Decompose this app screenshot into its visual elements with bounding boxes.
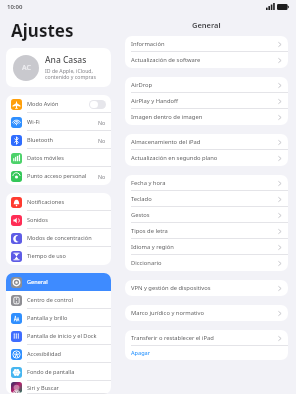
staticText: Pantalla y brillo <box>27 314 106 322</box>
button[interactable]: Apagar <box>125 346 288 360</box>
staticText: AirDrop <box>131 81 278 89</box>
staticText: Almacenamiento del iPad <box>131 138 278 146</box>
button[interactable]: Actualización de software <box>125 52 288 68</box>
button[interactable]: Bluetooth <box>6 131 111 149</box>
staticText: Modos de concentración <box>27 234 106 242</box>
staticText: Apagar <box>131 349 151 357</box>
button[interactable]: Modo Avión <box>89 100 106 109</box>
button[interactable]: VPN y gestión de dispositivos <box>125 280 288 296</box>
button[interactable]: Sonidos <box>6 211 111 229</box>
staticText: Diccionario <box>131 259 278 267</box>
button[interactable]: Tipos de letra <box>125 223 288 239</box>
button[interactable]: Marco jurídico y normativo <box>125 305 288 321</box>
button[interactable]: Gestos <box>125 207 288 223</box>
staticText: Punto acceso personal <box>27 172 98 180</box>
button[interactable]: Notificaciones <box>6 193 111 211</box>
button[interactable]: Pantalla y brillo <box>6 309 111 327</box>
staticText: Notificaciones <box>27 198 106 206</box>
staticText: Actualización en segundo plano <box>131 154 278 162</box>
staticText: AC <box>22 63 31 73</box>
staticText: Tipos de letra <box>131 227 278 235</box>
staticText: Idioma y región <box>131 243 278 251</box>
staticText: Siri y Buscar <box>27 384 106 392</box>
button[interactable]: AC <box>6 48 111 87</box>
staticText: VPN y gestión de dispositivos <box>131 284 278 292</box>
staticText: Ajustes <box>11 19 74 42</box>
button[interactable]: Idioma y región <box>125 239 288 255</box>
button[interactable]: Imagen dentro de imagen <box>125 109 288 125</box>
staticText: Marco jurídico y normativo <box>131 309 278 317</box>
button[interactable]: AirDrop <box>125 77 288 93</box>
button[interactable]: Fondo de pantalla <box>6 363 111 381</box>
button[interactable]: Diccionario <box>125 255 288 271</box>
button[interactable]: Datos móviles <box>6 149 111 167</box>
button[interactable]: Tiempo de uso <box>6 247 111 265</box>
staticText: Actualización de software <box>131 56 278 64</box>
button[interactable]: Accesibilidad <box>6 345 111 363</box>
staticText: Sonidos <box>27 216 106 224</box>
staticText: No <box>98 173 106 180</box>
button[interactable]: Actualización en segundo plano <box>125 150 288 166</box>
staticText: 10:00 <box>7 3 23 11</box>
staticText: Fecha y hora <box>131 179 278 187</box>
button[interactable]: Almacenamiento del iPad <box>125 134 288 150</box>
staticText: Bluetooth <box>27 136 98 144</box>
staticText: Datos móviles <box>27 154 106 162</box>
staticText: Gestos <box>131 211 278 219</box>
button[interactable]: Modos de concentración <box>6 229 111 247</box>
staticText: Tiempo de uso <box>27 252 106 260</box>
staticText: Centro de control <box>27 296 106 304</box>
staticText: General <box>192 20 221 30</box>
staticText: General <box>27 278 106 286</box>
button[interactable]: Fecha y hora <box>125 175 288 191</box>
staticText: No <box>98 137 106 144</box>
button[interactable]: Modo Avión <box>6 95 111 113</box>
button[interactable]: Teclado <box>125 191 288 207</box>
staticText: Ana Casas <box>45 54 87 66</box>
staticText: Imagen dentro de imagen <box>131 113 278 121</box>
button[interactable]: General <box>6 273 111 291</box>
button[interactable]: AirPlay y Handoff <box>125 93 288 109</box>
staticText: Wi-Fi <box>27 118 98 126</box>
button[interactable]: Wi-Fi <box>6 113 111 131</box>
button[interactable]: Información <box>125 36 288 52</box>
staticText: Modo Avión <box>27 100 89 108</box>
staticText: Fondo de pantalla <box>27 368 106 376</box>
staticText: Pantalla de inicio y el Dock <box>27 332 106 340</box>
staticText: Teclado <box>131 195 278 203</box>
button[interactable]: Siri y Buscar <box>6 381 111 394</box>
button[interactable]: Punto acceso personal <box>6 167 111 185</box>
button[interactable]: Pantalla de inicio y el Dock <box>6 327 111 345</box>
staticText: No <box>98 119 106 126</box>
staticText: Información <box>131 40 278 48</box>
staticText: Transferir o restablecer el iPad <box>131 334 278 342</box>
staticText: ID de Apple, iCloud, contenido y compras <box>45 67 96 81</box>
staticText: AirPlay y Handoff <box>131 97 278 105</box>
button[interactable]: Transferir o restablecer el iPad <box>125 330 288 346</box>
staticText: Accesibilidad <box>27 350 106 358</box>
button[interactable]: Centro de control <box>6 291 111 309</box>
